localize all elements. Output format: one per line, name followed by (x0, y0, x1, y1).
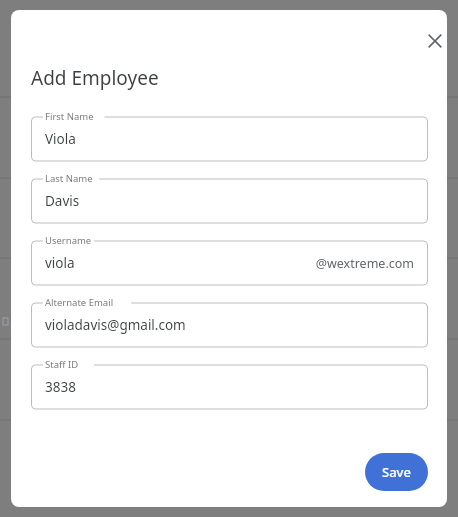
staticText: Username (45, 234, 92, 247)
staticText: Save (382, 463, 411, 481)
staticText: violadavis@gmail.com (45, 316, 186, 334)
staticText: Add Employee (31, 65, 159, 91)
staticText: viola (45, 254, 75, 272)
staticText: Last Name (45, 172, 93, 185)
button[interactable]: Staff ID (31, 356, 428, 409)
staticText: Davis (45, 192, 80, 210)
button[interactable]: Last Name (31, 170, 428, 223)
button[interactable]: Username (31, 232, 428, 285)
staticText: 3838 (45, 378, 76, 396)
button[interactable]: Save (365, 453, 428, 491)
button[interactable]: Close (416, 22, 447, 60)
button[interactable]: Alternate Email (31, 294, 428, 347)
staticText: Staff ID (45, 358, 79, 371)
staticText: Alternate Email (45, 296, 114, 309)
staticText: First Name (45, 110, 94, 123)
button[interactable]: First Name (31, 108, 428, 161)
staticText: Viola (45, 130, 76, 148)
staticText: @wextreme.com (315, 255, 414, 272)
